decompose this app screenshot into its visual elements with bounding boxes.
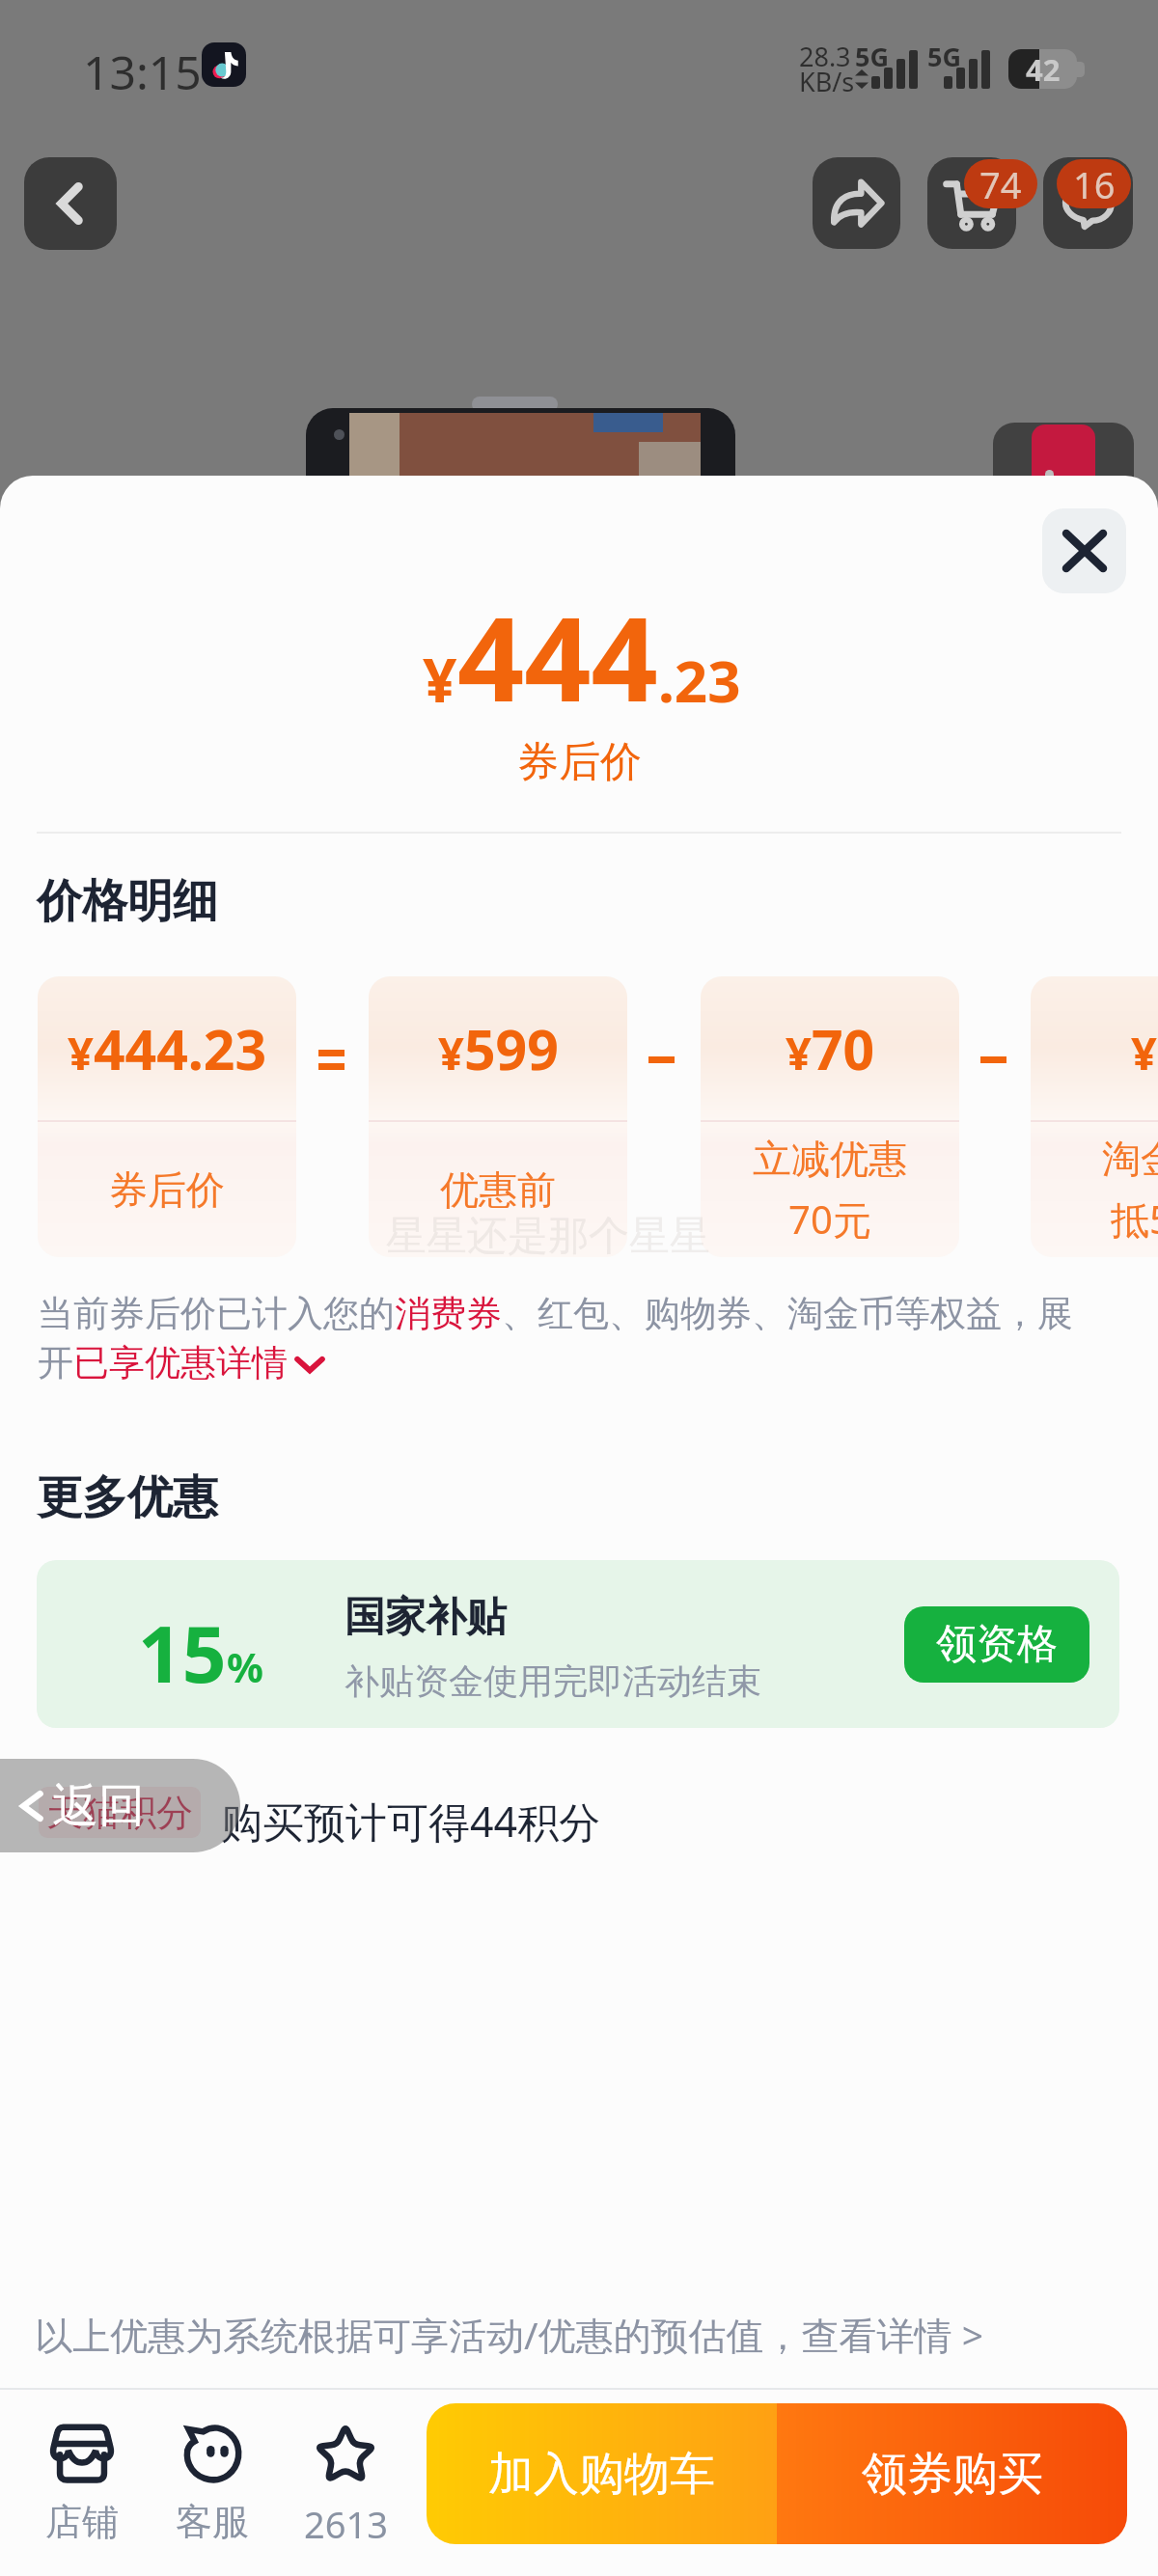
staticText: 70 xyxy=(812,1011,875,1086)
button[interactable]: 当前券后价已计入您的消费券、红包、购物券、淘金币等权益，展开已享优惠详情 xyxy=(38,1291,1082,1385)
staticText: 店铺 xyxy=(45,2499,119,2545)
button[interactable]: 加入购物车 xyxy=(427,2403,777,2544)
button[interactable]: Close xyxy=(1042,508,1126,593)
button[interactable]: 天猫积分 xyxy=(39,1787,201,1838)
button[interactable]: 15 xyxy=(37,1560,1119,1728)
staticText: 74 xyxy=(979,159,1022,208)
staticText: 13:15 xyxy=(83,41,202,103)
staticText: 加入购物车 xyxy=(488,2446,715,2503)
staticText: 价格明细 xyxy=(37,873,218,930)
staticText: ¥ xyxy=(438,1022,464,1083)
button[interactable]: 以上优惠为系统根据可享活动/优惠的预估值，查看详情 > xyxy=(35,2309,983,2360)
staticText: ¥ xyxy=(68,1022,94,1083)
staticText: 抵5元 xyxy=(1111,1192,1158,1246)
button[interactable]: Back xyxy=(24,157,117,250)
staticText: 领券购买 xyxy=(862,2446,1043,2503)
staticText: 天猫积分 xyxy=(46,1790,193,1836)
staticText: 返回 xyxy=(52,1777,145,1835)
button[interactable]: Cart xyxy=(927,157,1016,249)
staticText: 客服 xyxy=(176,2499,249,2545)
button[interactable]: Messages xyxy=(1043,157,1133,249)
staticText: ¥ xyxy=(786,1022,812,1083)
staticText: 淘金币 xyxy=(1102,1135,1158,1183)
staticText: .23 xyxy=(658,641,741,720)
staticText: 国家补贴 xyxy=(345,1592,507,1643)
staticText: 42 xyxy=(1026,49,1061,89)
button[interactable]: ¥ xyxy=(1031,976,1158,1257)
button[interactable]: 领券购买 xyxy=(777,2403,1127,2544)
button[interactable]: Share xyxy=(813,157,900,249)
button[interactable]: ¥ xyxy=(701,976,959,1257)
staticText: KB/s xyxy=(799,64,855,99)
staticText: 28.3 xyxy=(799,39,851,74)
staticText: 444.23 xyxy=(94,1011,267,1086)
staticText: 5G xyxy=(855,39,889,74)
button[interactable]: ¥ xyxy=(369,976,627,1257)
button[interactable]: 返回 xyxy=(0,1759,240,1852)
button[interactable]: ¥ xyxy=(38,976,296,1257)
button[interactable]: 领资格 xyxy=(904,1606,1089,1683)
button[interactable]: 店铺 xyxy=(24,2390,140,2545)
staticText: 5G xyxy=(927,39,961,74)
staticText: ¥ xyxy=(423,639,457,720)
button[interactable]: Stats xyxy=(993,423,1134,505)
staticText: 优惠前 xyxy=(440,1165,556,1214)
staticText: ¥ xyxy=(1131,1022,1157,1083)
staticText: 立减优惠 xyxy=(753,1135,907,1183)
staticText: 当前券后价已计入您的消费券、红包、购物券、淘金币等权益，展开已享优惠详情 xyxy=(38,1291,1082,1385)
button[interactable]: 客服 xyxy=(154,2390,270,2545)
staticText: 599 xyxy=(464,1011,559,1086)
staticText: 70元 xyxy=(788,1192,871,1246)
staticText: 2613 xyxy=(304,2499,388,2549)
staticText: 券后价 xyxy=(517,736,642,788)
button[interactable]: 2613 xyxy=(288,2390,403,2549)
staticText: 星星还是那个星星 xyxy=(386,1211,710,1262)
staticText: 更多优惠 xyxy=(37,1469,218,1526)
staticText: 补贴资金使用完即活动结束 xyxy=(345,1659,761,1703)
staticText: 15 xyxy=(138,1600,227,1705)
staticText: 券后价 xyxy=(109,1165,225,1214)
staticText: 5 xyxy=(1157,1011,1158,1086)
staticText: 16 xyxy=(1073,159,1116,208)
staticText: 领资格 xyxy=(936,1619,1058,1670)
staticText: 购买预计可得44积分 xyxy=(221,1793,601,1850)
staticText: % xyxy=(227,1639,263,1694)
staticText: 444 xyxy=(457,577,658,736)
